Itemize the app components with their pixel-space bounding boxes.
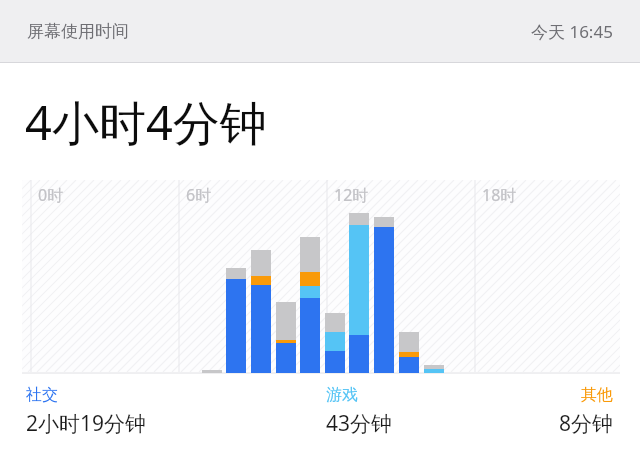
staticText: 8分钟 [558,409,613,438]
button[interactable]: 游戏 [326,385,393,438]
staticText: 游戏 [326,385,358,405]
button[interactable]: 屏幕使用时间 [0,0,640,62]
staticText: 12时 [334,184,369,206]
button[interactable]: 社交 [26,385,147,438]
staticText: 今天 16:45 [531,20,613,43]
staticText: 43分钟 [326,409,393,438]
staticText: 18时 [482,184,517,206]
staticText: 其他 [581,385,613,405]
staticText: 社交 [26,385,58,405]
staticText: 6时 [186,184,212,206]
staticText: 屏幕使用时间 [27,21,129,42]
staticText: 2小时19分钟 [26,409,147,438]
button[interactable]: 屏幕使用时间图表 [0,180,640,375]
staticText: 4小时4分钟 [25,90,267,154]
staticText: 0时 [38,184,64,206]
button[interactable]: 其他 [558,385,613,438]
